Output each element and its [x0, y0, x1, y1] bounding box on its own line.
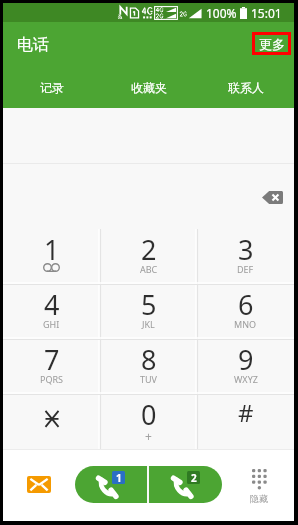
- staticText: 隐藏: [250, 493, 268, 504]
- button[interactable]: 0: [100, 394, 197, 449]
- staticText: 2: [141, 231, 157, 268]
- staticText: 电话: [17, 35, 49, 55]
- button[interactable]: 7: [3, 339, 100, 394]
- button[interactable]: 2: [149, 466, 222, 503]
- staticText: 1: [44, 231, 60, 268]
- button[interactable]: 1: [3, 229, 100, 284]
- staticText: 记录: [40, 80, 64, 95]
- staticText: 0: [141, 396, 157, 433]
- staticText: 联系人: [228, 80, 264, 95]
- staticText: DEF: [237, 263, 254, 275]
- button[interactable]: 2: [100, 229, 197, 284]
- button[interactable]: 联系人: [197, 67, 294, 108]
- staticText: TUV: [140, 373, 157, 385]
- staticText: PQRS: [40, 373, 64, 385]
- button[interactable]: 更多: [252, 32, 291, 55]
- staticText: JKL: [142, 318, 155, 330]
- staticText: 7: [44, 341, 60, 378]
- button[interactable]: #: [197, 394, 294, 449]
- button[interactable]: 5: [100, 284, 197, 339]
- staticText: MNO: [234, 318, 257, 330]
- staticText: 收藏夹: [131, 80, 167, 95]
- staticText: 9: [238, 341, 254, 378]
- button[interactable]: 4: [3, 284, 100, 339]
- button[interactable]: 记录: [3, 67, 100, 108]
- staticText: 5: [141, 286, 157, 323]
- button[interactable]: [3, 394, 100, 449]
- staticText: WXYZ: [234, 373, 258, 385]
- staticText: GHI: [43, 318, 60, 330]
- staticText: 100%: [206, 5, 237, 21]
- staticText: 3: [238, 231, 254, 268]
- button[interactable]: 9: [197, 339, 294, 394]
- button[interactable]: 1: [75, 466, 147, 503]
- staticText: 15:01: [251, 5, 282, 21]
- button[interactable]: Hide keypad: [243, 469, 275, 504]
- staticText: +: [145, 428, 152, 444]
- button[interactable]: 8: [100, 339, 197, 394]
- button[interactable]: Backspace: [255, 184, 289, 210]
- button[interactable]: 收藏夹: [100, 67, 197, 108]
- staticText: 6: [238, 286, 254, 323]
- staticText: ABC: [140, 263, 158, 275]
- button[interactable]: 3: [197, 229, 294, 284]
- staticText: 4: [44, 286, 60, 323]
- staticText: #: [238, 396, 254, 429]
- staticText: 2: [191, 471, 197, 484]
- staticText: 8: [141, 341, 157, 378]
- staticText: 1: [116, 471, 122, 484]
- button[interactable]: 6: [197, 284, 294, 339]
- staticText: 更多: [259, 36, 285, 52]
- button[interactable]: Messages: [27, 476, 51, 493]
